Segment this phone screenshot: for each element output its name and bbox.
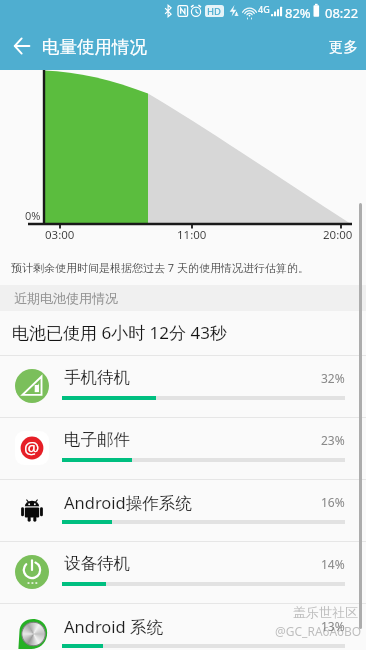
- staticText: HD: [207, 5, 222, 18]
- staticText: 23%: [321, 432, 345, 448]
- staticText: 电量使用情况: [42, 36, 147, 58]
- button[interactable]: 设备待机: [0, 542, 366, 603]
- button[interactable]: Android操作系统: [0, 480, 366, 541]
- staticText: 14%: [321, 556, 345, 572]
- staticText: 20:00: [323, 227, 353, 243]
- staticText: 手机待机: [64, 367, 130, 388]
- staticText: 盖乐世社区: [293, 604, 358, 620]
- staticText: Android 系统: [64, 615, 164, 638]
- staticText: 设备待机: [64, 553, 130, 574]
- staticText: @GC_RA6A6BO: [275, 623, 362, 639]
- staticText: Android操作系统: [64, 491, 192, 514]
- button[interactable]: Android 系统: [0, 604, 366, 650]
- staticText: 0%: [25, 208, 41, 223]
- staticText: 16%: [321, 494, 345, 510]
- staticText: 13%: [321, 618, 345, 634]
- staticText: @: [24, 436, 40, 459]
- staticText: 08:22: [325, 4, 359, 22]
- staticText: 电子邮件: [64, 429, 130, 450]
- staticText: 近期电池使用情况: [14, 290, 118, 306]
- button[interactable]: Back: [0, 22, 44, 70]
- staticText: 4G: [258, 3, 270, 15]
- staticText: 32%: [321, 370, 345, 386]
- staticText: 更多: [329, 38, 358, 56]
- staticText: 预计剩余使用时间是根据您过去 7 天的使用情况进行估算的。: [11, 260, 310, 275]
- staticText: 82%: [285, 4, 311, 22]
- staticText: 11:00: [177, 227, 207, 243]
- staticText: 电池已使用 6小时 12分 43秒: [12, 321, 227, 344]
- button[interactable]: 手机待机: [0, 356, 366, 417]
- button[interactable]: @: [0, 418, 366, 479]
- button[interactable]: 更多: [317, 22, 366, 70]
- staticText: 03:00: [45, 227, 75, 243]
